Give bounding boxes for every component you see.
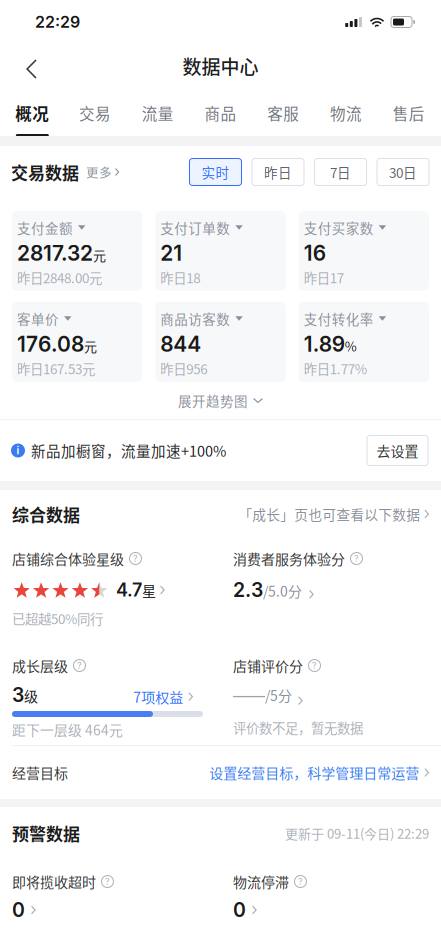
staticText: 22:29 bbox=[35, 12, 80, 32]
staticText: 店铺评价分 bbox=[233, 655, 303, 676]
staticText: 设置经营目标，科学管理日常运营 bbox=[209, 762, 419, 783]
button[interactable]: 「成长」页也可查看以下数据 bbox=[238, 504, 429, 524]
staticText: 星 bbox=[142, 580, 156, 600]
staticText: 1.89 bbox=[304, 331, 345, 357]
button[interactable]: 0 bbox=[12, 900, 233, 920]
staticText: 昨日167.53元 bbox=[17, 359, 95, 378]
staticText: 消费者服务体验分 bbox=[233, 548, 345, 569]
button[interactable]: 流量 bbox=[126, 88, 189, 136]
staticText: 客单价 bbox=[17, 309, 59, 328]
staticText: ? bbox=[105, 876, 110, 887]
staticText: 21 bbox=[160, 240, 182, 266]
staticText: 2.3 bbox=[233, 578, 263, 602]
button[interactable]: 7日 bbox=[314, 158, 366, 185]
staticText: 昨日18 bbox=[160, 268, 200, 287]
staticText: i bbox=[16, 444, 19, 457]
staticText: 3 bbox=[12, 683, 24, 707]
staticText: 昨日2848.00元 bbox=[17, 268, 102, 287]
staticText: 昨日17 bbox=[304, 268, 344, 287]
staticText: 交易 bbox=[79, 102, 111, 124]
staticText: ? bbox=[298, 876, 303, 887]
staticText: 综合数据 bbox=[12, 502, 80, 526]
staticText: 昨日956 bbox=[160, 359, 207, 378]
staticText: 即将揽收超时 bbox=[12, 871, 96, 892]
button[interactable]: 客单价 bbox=[12, 302, 142, 382]
staticText: 店铺综合体验星级 bbox=[12, 548, 124, 569]
button[interactable]: 支付转化率 bbox=[299, 302, 429, 382]
button[interactable]: 支付订单数 bbox=[155, 211, 286, 291]
staticText: 客服 bbox=[267, 102, 299, 124]
staticText: 支付买家数 bbox=[304, 218, 374, 237]
button[interactable]: 更多 bbox=[79, 157, 119, 187]
button[interactable]: 商品 bbox=[189, 88, 252, 136]
staticText: 去设置 bbox=[376, 440, 418, 461]
staticText: 已超越50%同行 bbox=[12, 609, 103, 628]
button[interactable]: 售后 bbox=[377, 88, 440, 136]
staticText: ? bbox=[133, 553, 138, 564]
staticText: 预警数据 bbox=[12, 821, 80, 845]
staticText: 商品 bbox=[204, 102, 236, 124]
staticText: 新品加橱窗，流量加速+100% bbox=[31, 440, 226, 461]
button[interactable]: 实时 bbox=[189, 158, 241, 185]
button[interactable]: 7项权益 bbox=[133, 686, 193, 707]
staticText: ? bbox=[354, 553, 359, 564]
button[interactable]: 2.3 bbox=[233, 579, 429, 601]
staticText: 展开趋势图 bbox=[178, 391, 248, 410]
staticText: /5.0分 bbox=[263, 580, 302, 601]
staticText: 评价数不足，暂无数据 bbox=[233, 718, 363, 737]
staticText: 数据中心 bbox=[182, 52, 258, 80]
staticText: 30日 bbox=[389, 162, 417, 182]
staticText: 物流停滞 bbox=[233, 871, 289, 892]
staticText: 7日 bbox=[330, 162, 351, 182]
button[interactable]: 客服 bbox=[252, 88, 315, 136]
staticText: 4.7 bbox=[116, 579, 142, 601]
staticText: 距下一层级 464元 bbox=[12, 719, 123, 739]
button[interactable]: 4.7 bbox=[12, 579, 233, 601]
staticText: 交易数据 bbox=[11, 160, 79, 184]
staticText: 元 bbox=[84, 336, 97, 355]
staticText: 更多 bbox=[86, 163, 112, 181]
staticText: 级 bbox=[24, 685, 38, 706]
staticText: 2817.32 bbox=[17, 240, 93, 266]
staticText: ? bbox=[77, 660, 82, 671]
staticText: 0 bbox=[12, 898, 25, 922]
staticText: ? bbox=[312, 660, 317, 671]
button[interactable]: 30日 bbox=[377, 158, 429, 185]
staticText: 844 bbox=[160, 331, 201, 357]
staticText: 物流 bbox=[330, 102, 362, 124]
button[interactable]: 支付买家数 bbox=[299, 211, 429, 291]
button[interactable]: 支付金额 bbox=[12, 211, 142, 291]
staticText: 实时 bbox=[201, 162, 229, 182]
staticText: 商品访客数 bbox=[160, 309, 230, 328]
button[interactable]: 经营目标 bbox=[0, 746, 441, 799]
staticText: 支付转化率 bbox=[304, 309, 374, 328]
staticText: 流量 bbox=[142, 102, 174, 124]
staticText: 成长层级 bbox=[12, 655, 68, 676]
staticText: 7项权益 bbox=[133, 686, 183, 707]
staticText: 16 bbox=[304, 240, 326, 266]
button[interactable]: 商品访客数 bbox=[155, 302, 286, 382]
staticText: 支付订单数 bbox=[160, 218, 230, 237]
button[interactable]: 去设置 bbox=[367, 435, 428, 465]
button[interactable]: 交易 bbox=[64, 88, 126, 136]
staticText: % bbox=[345, 336, 357, 355]
staticText: 0 bbox=[233, 898, 246, 922]
staticText: 元 bbox=[93, 245, 106, 264]
staticText: 176.08 bbox=[17, 331, 84, 357]
button[interactable]: 物流 bbox=[315, 88, 377, 136]
button[interactable]: 0 bbox=[233, 900, 429, 920]
button[interactable]: 返回 bbox=[0, 44, 53, 88]
button[interactable]: 展开趋势图 bbox=[0, 382, 441, 419]
staticText: 昨日1.77% bbox=[304, 359, 367, 378]
staticText: /5分 bbox=[265, 685, 292, 705]
staticText: 更新于 09-11(今日) 22:29 bbox=[285, 824, 429, 842]
staticText: 经营目标 bbox=[12, 762, 68, 783]
staticText: 昨日 bbox=[264, 162, 292, 182]
staticText: 概况 bbox=[15, 101, 49, 125]
staticText: 售后 bbox=[393, 102, 425, 124]
staticText: 支付金额 bbox=[17, 218, 73, 237]
button[interactable]: 概况 bbox=[1, 88, 64, 136]
staticText: 「成长」页也可查看以下数据 bbox=[238, 504, 420, 524]
button[interactable]: 昨日 bbox=[252, 158, 304, 185]
staticText: —— bbox=[233, 686, 265, 705]
